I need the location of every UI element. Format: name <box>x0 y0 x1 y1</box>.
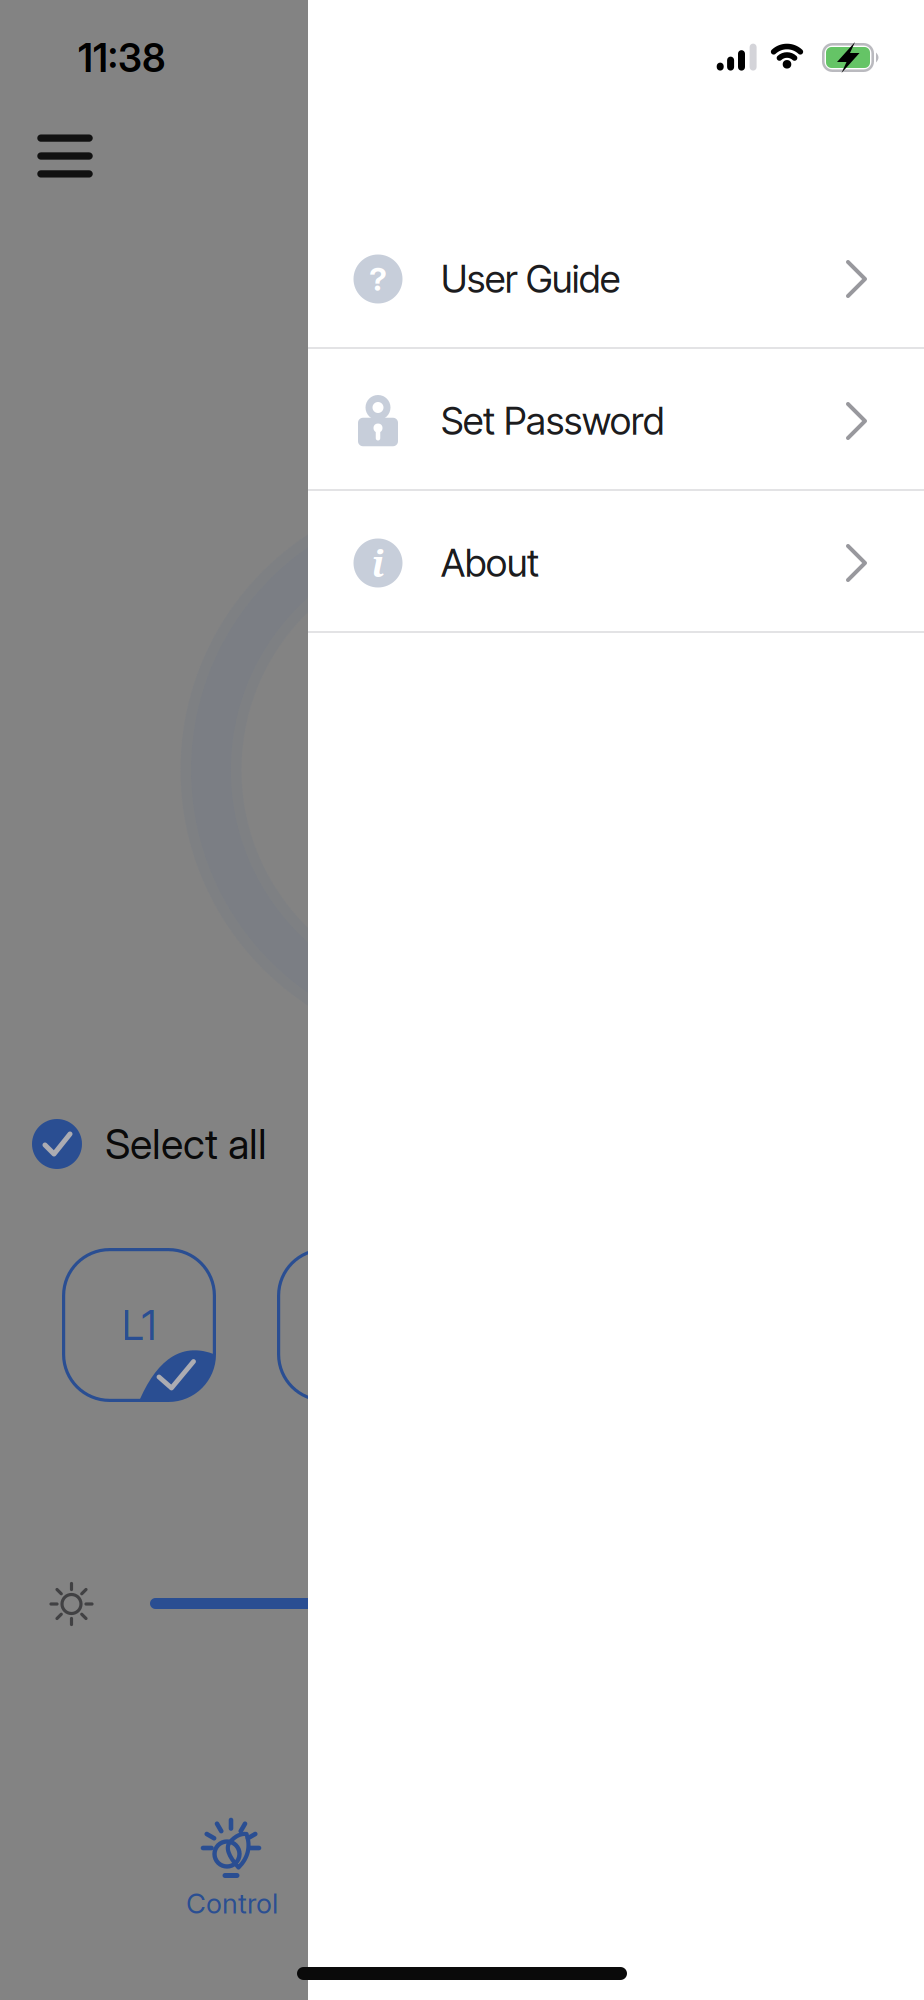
staticText: Select all <box>105 1119 267 1169</box>
staticText: 11:38 <box>78 35 166 81</box>
button[interactable]: Control <box>157 1817 307 1927</box>
button[interactable]: ? <box>308 208 924 350</box>
staticText: ? <box>369 260 387 298</box>
staticText: User Guide <box>441 256 620 302</box>
staticText: i <box>371 538 384 587</box>
button[interactable]: Set Password <box>308 350 924 492</box>
button[interactable]: Select all <box>32 1119 385 1169</box>
staticText: Control <box>186 1887 278 1920</box>
button[interactable]: i <box>308 492 924 634</box>
button[interactable] <box>30 126 100 186</box>
staticText: L1 <box>121 1300 156 1350</box>
button[interactable]: L1 <box>62 1248 216 1402</box>
staticText: About <box>441 540 539 586</box>
staticText: Set Password <box>441 398 664 444</box>
